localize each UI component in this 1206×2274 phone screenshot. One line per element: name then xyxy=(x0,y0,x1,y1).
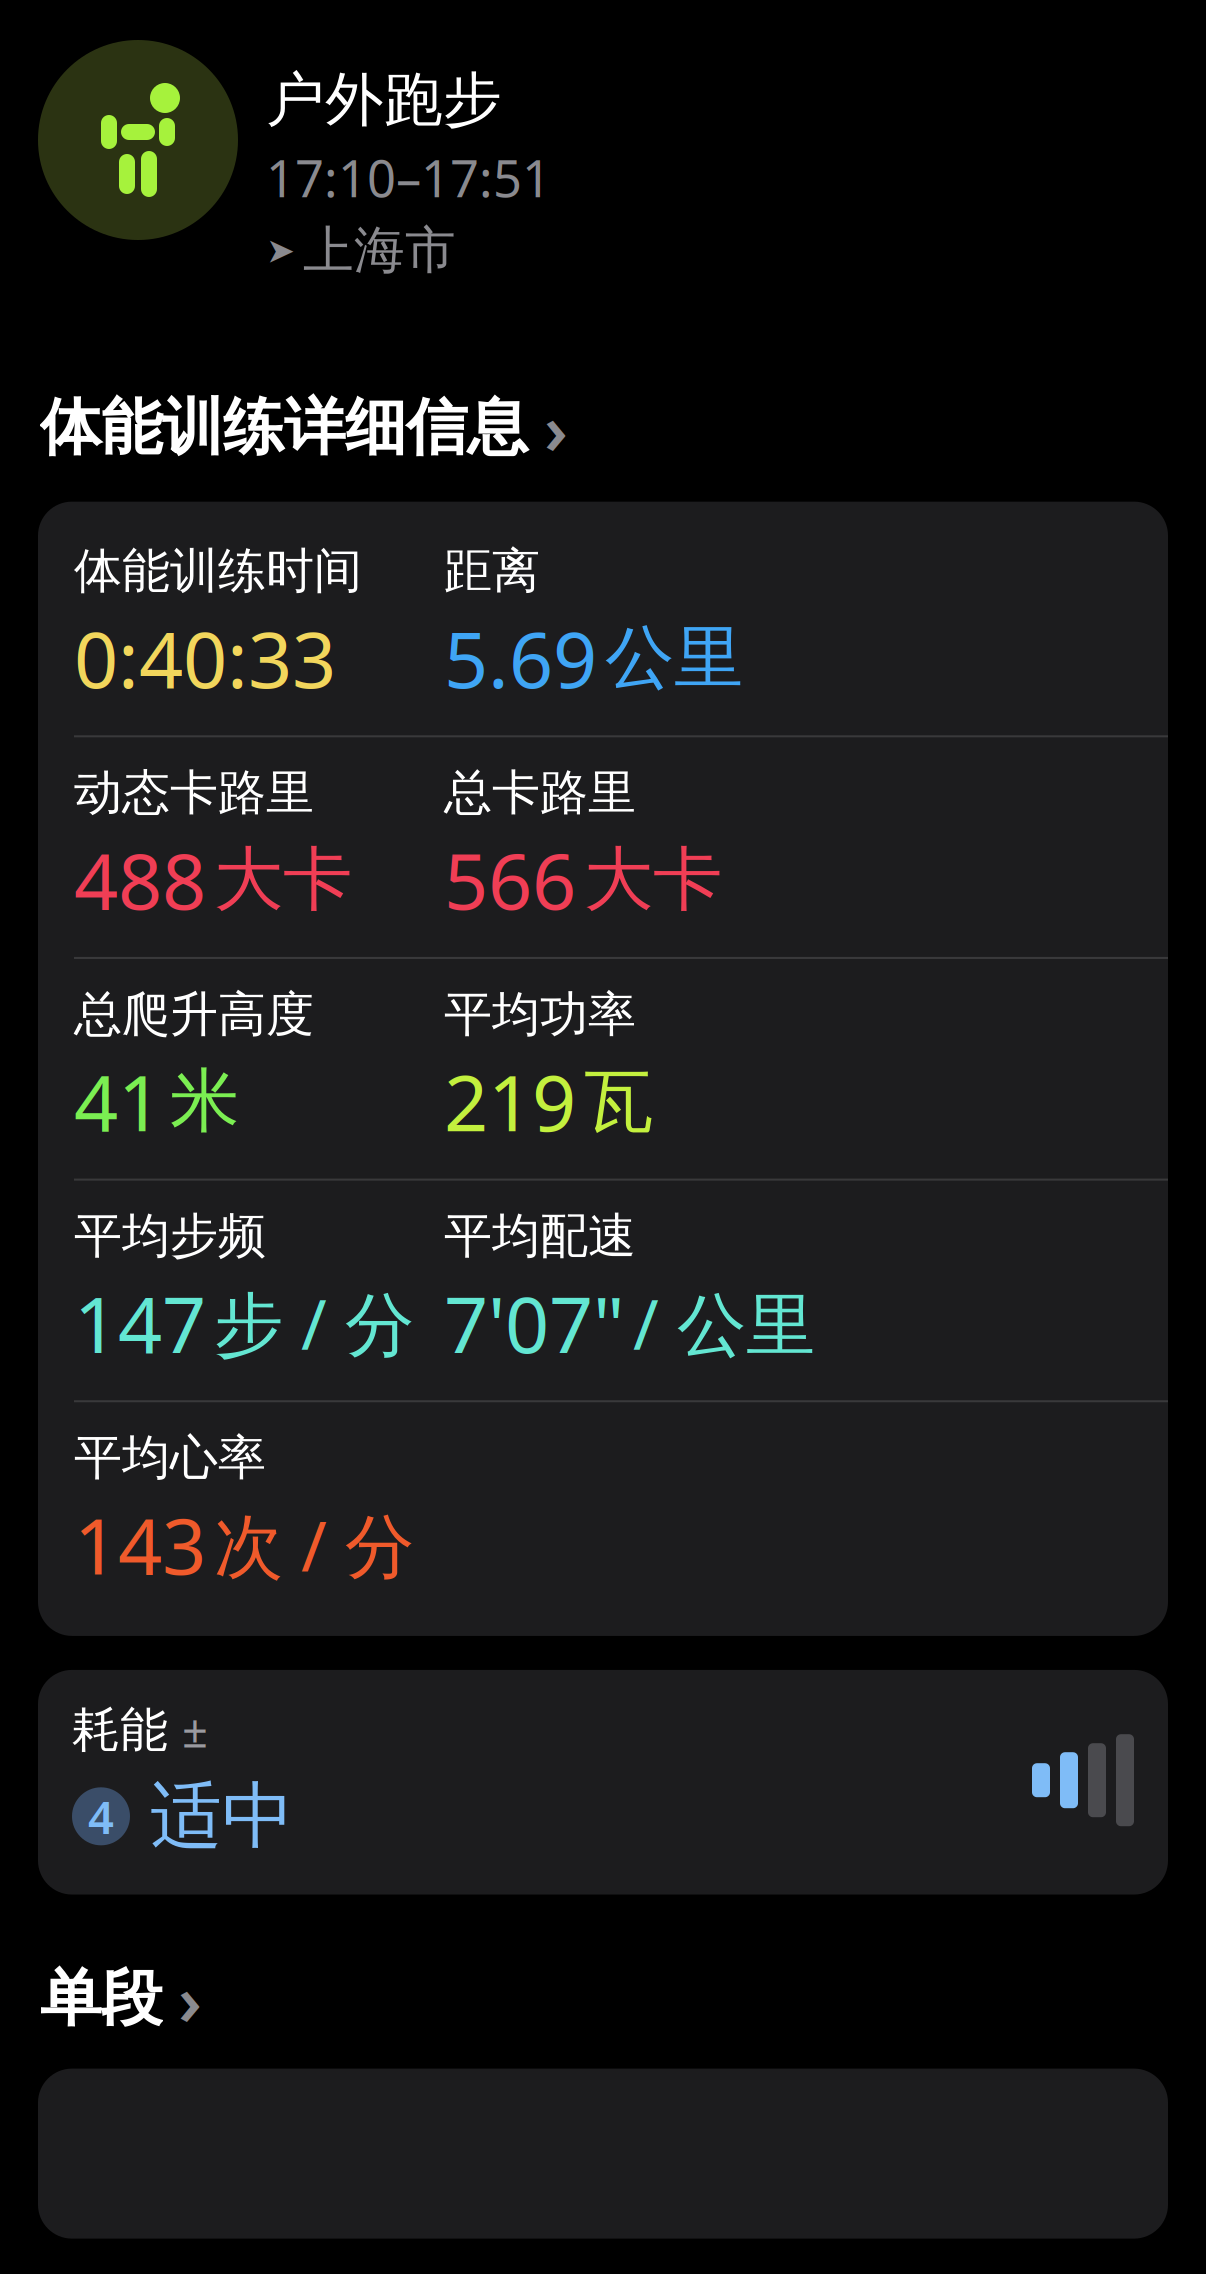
staticText: 17:10–17:51 xyxy=(266,144,551,211)
staticText: 次 / 分 xyxy=(214,1498,414,1591)
staticText: 公里 xyxy=(605,615,743,701)
staticText: / 公里 xyxy=(633,1277,815,1369)
staticText: 步 / 分 xyxy=(214,1277,414,1369)
button[interactable]: 体能训练详细信息 xyxy=(0,282,1206,502)
staticText: 平均配速 xyxy=(444,1207,636,1266)
staticText: 米 xyxy=(170,1059,239,1144)
staticText: 总卡路里 xyxy=(444,763,636,822)
staticText: 41 xyxy=(74,1050,162,1153)
staticText: 单段 xyxy=(40,1961,162,2036)
staticText: 平均步频 xyxy=(74,1207,266,1266)
staticText: 5.69 xyxy=(444,607,597,709)
staticText: ➤ xyxy=(266,231,295,270)
staticText: 147 xyxy=(74,1272,206,1374)
staticText: › xyxy=(178,1952,202,2045)
button[interactable]: 单段 xyxy=(0,1894,1206,2069)
button[interactable]: 耗能 xyxy=(38,1670,1168,1894)
staticText: 体能训练详细信息 xyxy=(40,390,528,465)
staticText: 户外跑步 xyxy=(266,64,502,136)
staticText: 上海市 xyxy=(303,219,456,281)
staticText: 总爬升高度 xyxy=(74,985,314,1044)
staticText: 566 xyxy=(444,828,576,931)
staticText: 耗能 xyxy=(72,1700,168,1759)
staticText: ± xyxy=(182,1700,208,1760)
staticText: 488 xyxy=(74,828,206,931)
staticText: 动态卡路里 xyxy=(74,763,314,822)
staticText: 平均心率 xyxy=(74,1428,266,1487)
staticText: 143 xyxy=(74,1493,206,1596)
staticText: 0:40:33 xyxy=(74,607,336,709)
staticText: 距离 xyxy=(444,542,540,601)
staticText: 适中 xyxy=(150,1772,294,1860)
staticText: 大卡 xyxy=(214,837,352,922)
staticText: 平均功率 xyxy=(444,985,636,1044)
staticText: 大卡 xyxy=(584,837,722,922)
staticText: 219 xyxy=(444,1050,576,1153)
staticText: 7'07" xyxy=(444,1272,625,1374)
staticText: 瓦 xyxy=(584,1059,653,1144)
staticText: 4 xyxy=(88,1786,114,1846)
staticText: 体能训练时间 xyxy=(74,542,362,601)
staticText: › xyxy=(544,382,568,474)
